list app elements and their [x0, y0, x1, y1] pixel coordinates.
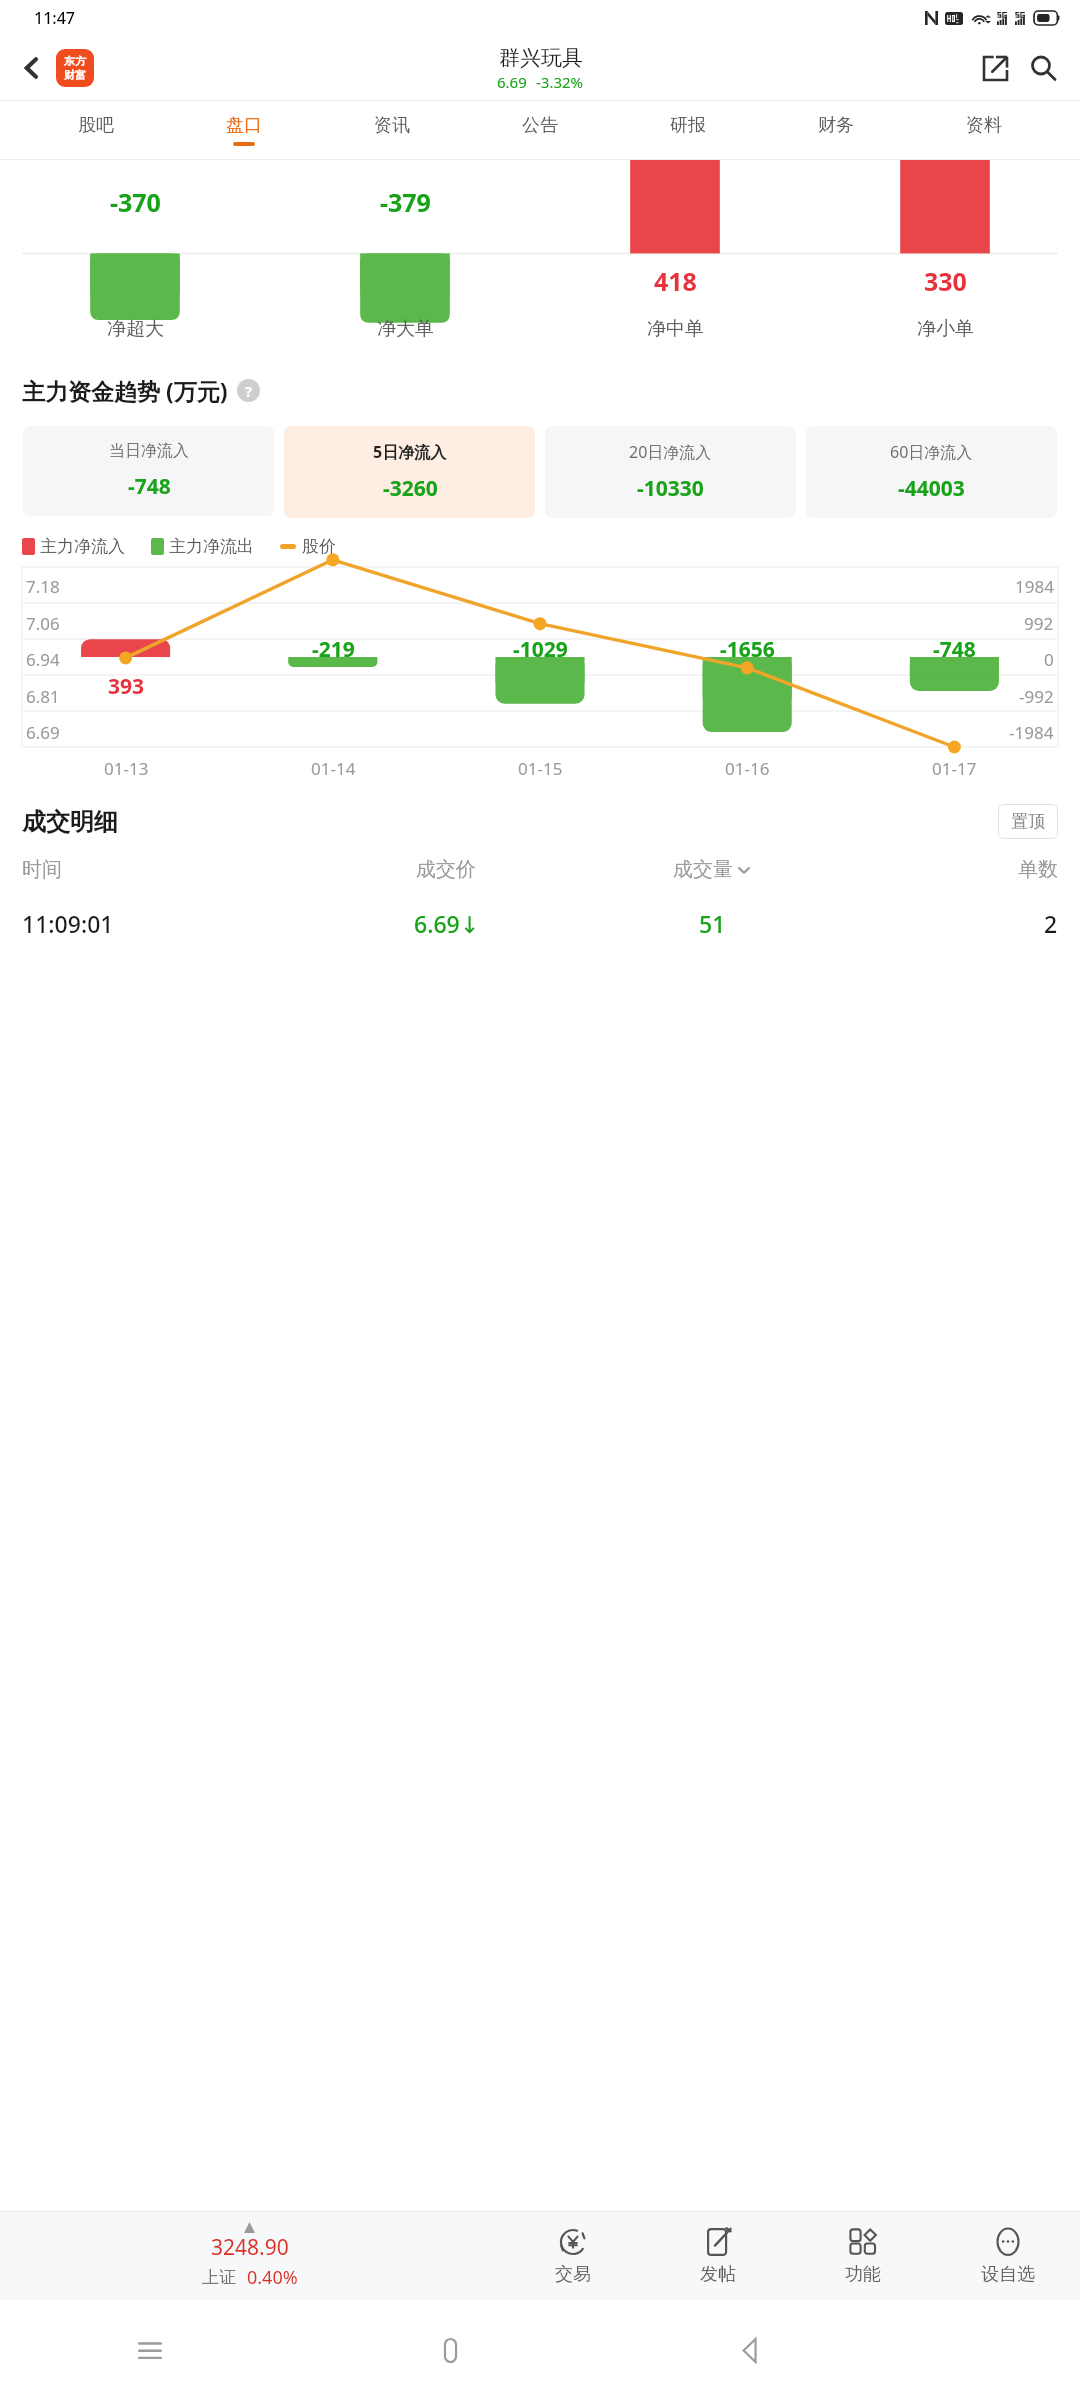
button[interactable]: 公告 — [466, 101, 614, 159]
staticText: 1984 — [1015, 575, 1054, 598]
staticText: 5日净流入 — [373, 441, 447, 463]
staticText: 60日净流入 — [890, 441, 973, 463]
staticText: 393 — [108, 672, 145, 701]
staticText: 主力净流入 — [40, 536, 125, 557]
staticText: 6.94 — [26, 648, 60, 671]
staticText: 公告 — [522, 114, 558, 137]
staticText: 单数 — [1018, 857, 1058, 882]
button[interactable]: 发帖 — [645, 2212, 790, 2300]
staticText: 7.06 — [26, 612, 60, 635]
staticText: 功能 — [845, 2263, 881, 2286]
staticText: 418 — [654, 264, 697, 298]
staticText: 当日净流入 — [109, 441, 189, 461]
staticText: -1656 — [720, 635, 775, 664]
staticText: -10330 — [637, 474, 704, 503]
button[interactable]: 盘口 — [170, 101, 318, 159]
button[interactable]: Search — [1018, 43, 1068, 93]
staticText: 交易 — [555, 2263, 591, 2286]
staticText: 11:47 — [34, 7, 75, 29]
button[interactable]: 设自选 — [935, 2212, 1080, 2300]
staticText: 财富 — [64, 68, 86, 82]
button[interactable]: 3248.90 — [0, 2212, 500, 2300]
staticText: 股价 — [302, 536, 336, 557]
staticText: 6.69↓ — [414, 908, 479, 939]
staticText: -44003 — [898, 474, 965, 503]
staticText: 资讯 — [374, 114, 410, 137]
button[interactable]: Recents — [121, 2321, 179, 2379]
button[interactable]: 60日净流入 — [806, 426, 1057, 518]
staticText: 330 — [924, 264, 967, 298]
staticText: 6.69 — [26, 721, 60, 744]
staticText: -1984 — [1009, 721, 1054, 744]
button[interactable]: 财务 — [762, 101, 910, 159]
staticText: -748 — [933, 635, 976, 664]
button[interactable]: Back — [8, 44, 56, 92]
staticText: 财务 — [818, 114, 854, 137]
staticText: -3260 — [383, 474, 438, 503]
button[interactable]: 20日净流入 — [545, 426, 796, 518]
staticText: 东方 — [64, 54, 86, 68]
staticText: -3.32% — [536, 72, 584, 92]
staticText: 盘口 — [226, 114, 262, 137]
button[interactable]: 置顶 — [998, 804, 1058, 839]
staticText: 20日净流入 — [629, 441, 712, 463]
button[interactable]: 研报 — [614, 101, 762, 159]
staticText: 成交量 — [673, 857, 733, 882]
staticText: 成交价 — [416, 857, 476, 882]
staticText: -748 — [128, 472, 171, 501]
staticText: ? — [245, 381, 253, 401]
staticText: 成交明细 — [22, 807, 118, 837]
staticText: 0 — [1044, 648, 1054, 671]
button[interactable]: 当日净流入 — [23, 426, 274, 516]
button[interactable]: Help — [237, 379, 260, 402]
staticText: 01-15 — [518, 757, 563, 780]
staticText: 51 — [699, 908, 726, 939]
staticText: 资料 — [966, 114, 1002, 137]
staticText: 3248.90 — [211, 2233, 289, 2262]
staticText: 2 — [1044, 908, 1058, 939]
staticText: 上证 — [202, 2267, 236, 2288]
staticText: 净小单 — [917, 317, 974, 341]
button[interactable]: 功能 — [790, 2212, 935, 2300]
staticText: -992 — [1019, 685, 1054, 708]
staticText: 设自选 — [981, 2263, 1035, 2286]
button[interactable]: 东方财富 — [56, 49, 94, 87]
button[interactable]: 资讯 — [318, 101, 466, 159]
staticText: 净超大 — [107, 317, 164, 341]
button[interactable]: 交易 — [500, 2212, 645, 2300]
staticText: 主力资金趋势 (万元) — [22, 375, 228, 406]
staticText: -379 — [380, 185, 431, 219]
staticText: 01-14 — [311, 757, 356, 780]
staticText: 研报 — [670, 114, 706, 137]
staticText: 0.40% — [247, 2265, 298, 2290]
button[interactable]: 5日净流入 — [284, 426, 535, 518]
staticText: 净大单 — [377, 317, 434, 341]
button[interactable]: 资料 — [910, 101, 1058, 159]
staticText: 置顶 — [1011, 811, 1045, 832]
staticText: 01-16 — [725, 757, 770, 780]
staticText: 11:09:01 — [22, 908, 114, 939]
staticText: 992 — [1024, 612, 1054, 635]
staticText: -219 — [312, 635, 355, 664]
staticText: 群兴玩具 — [499, 45, 583, 71]
staticText: 股吧 — [78, 114, 114, 137]
staticText: -370 — [110, 185, 161, 219]
button[interactable]: Home — [421, 2321, 479, 2379]
staticText: 01-17 — [932, 757, 977, 780]
staticText: -1029 — [513, 635, 568, 664]
button[interactable]: 股吧 — [22, 101, 170, 159]
staticText: 01-13 — [104, 757, 149, 780]
staticText: 发帖 — [700, 2263, 736, 2286]
staticText: 时间 — [22, 857, 62, 882]
staticText: 主力净流出 — [169, 536, 254, 557]
button[interactable]: Share — [972, 45, 1018, 91]
staticText: 6.69 — [497, 72, 527, 92]
staticText: 6.81 — [26, 685, 60, 708]
button[interactable]: Back — [721, 2321, 779, 2379]
staticText: 净中单 — [647, 317, 704, 341]
staticText: 7.18 — [26, 575, 60, 598]
